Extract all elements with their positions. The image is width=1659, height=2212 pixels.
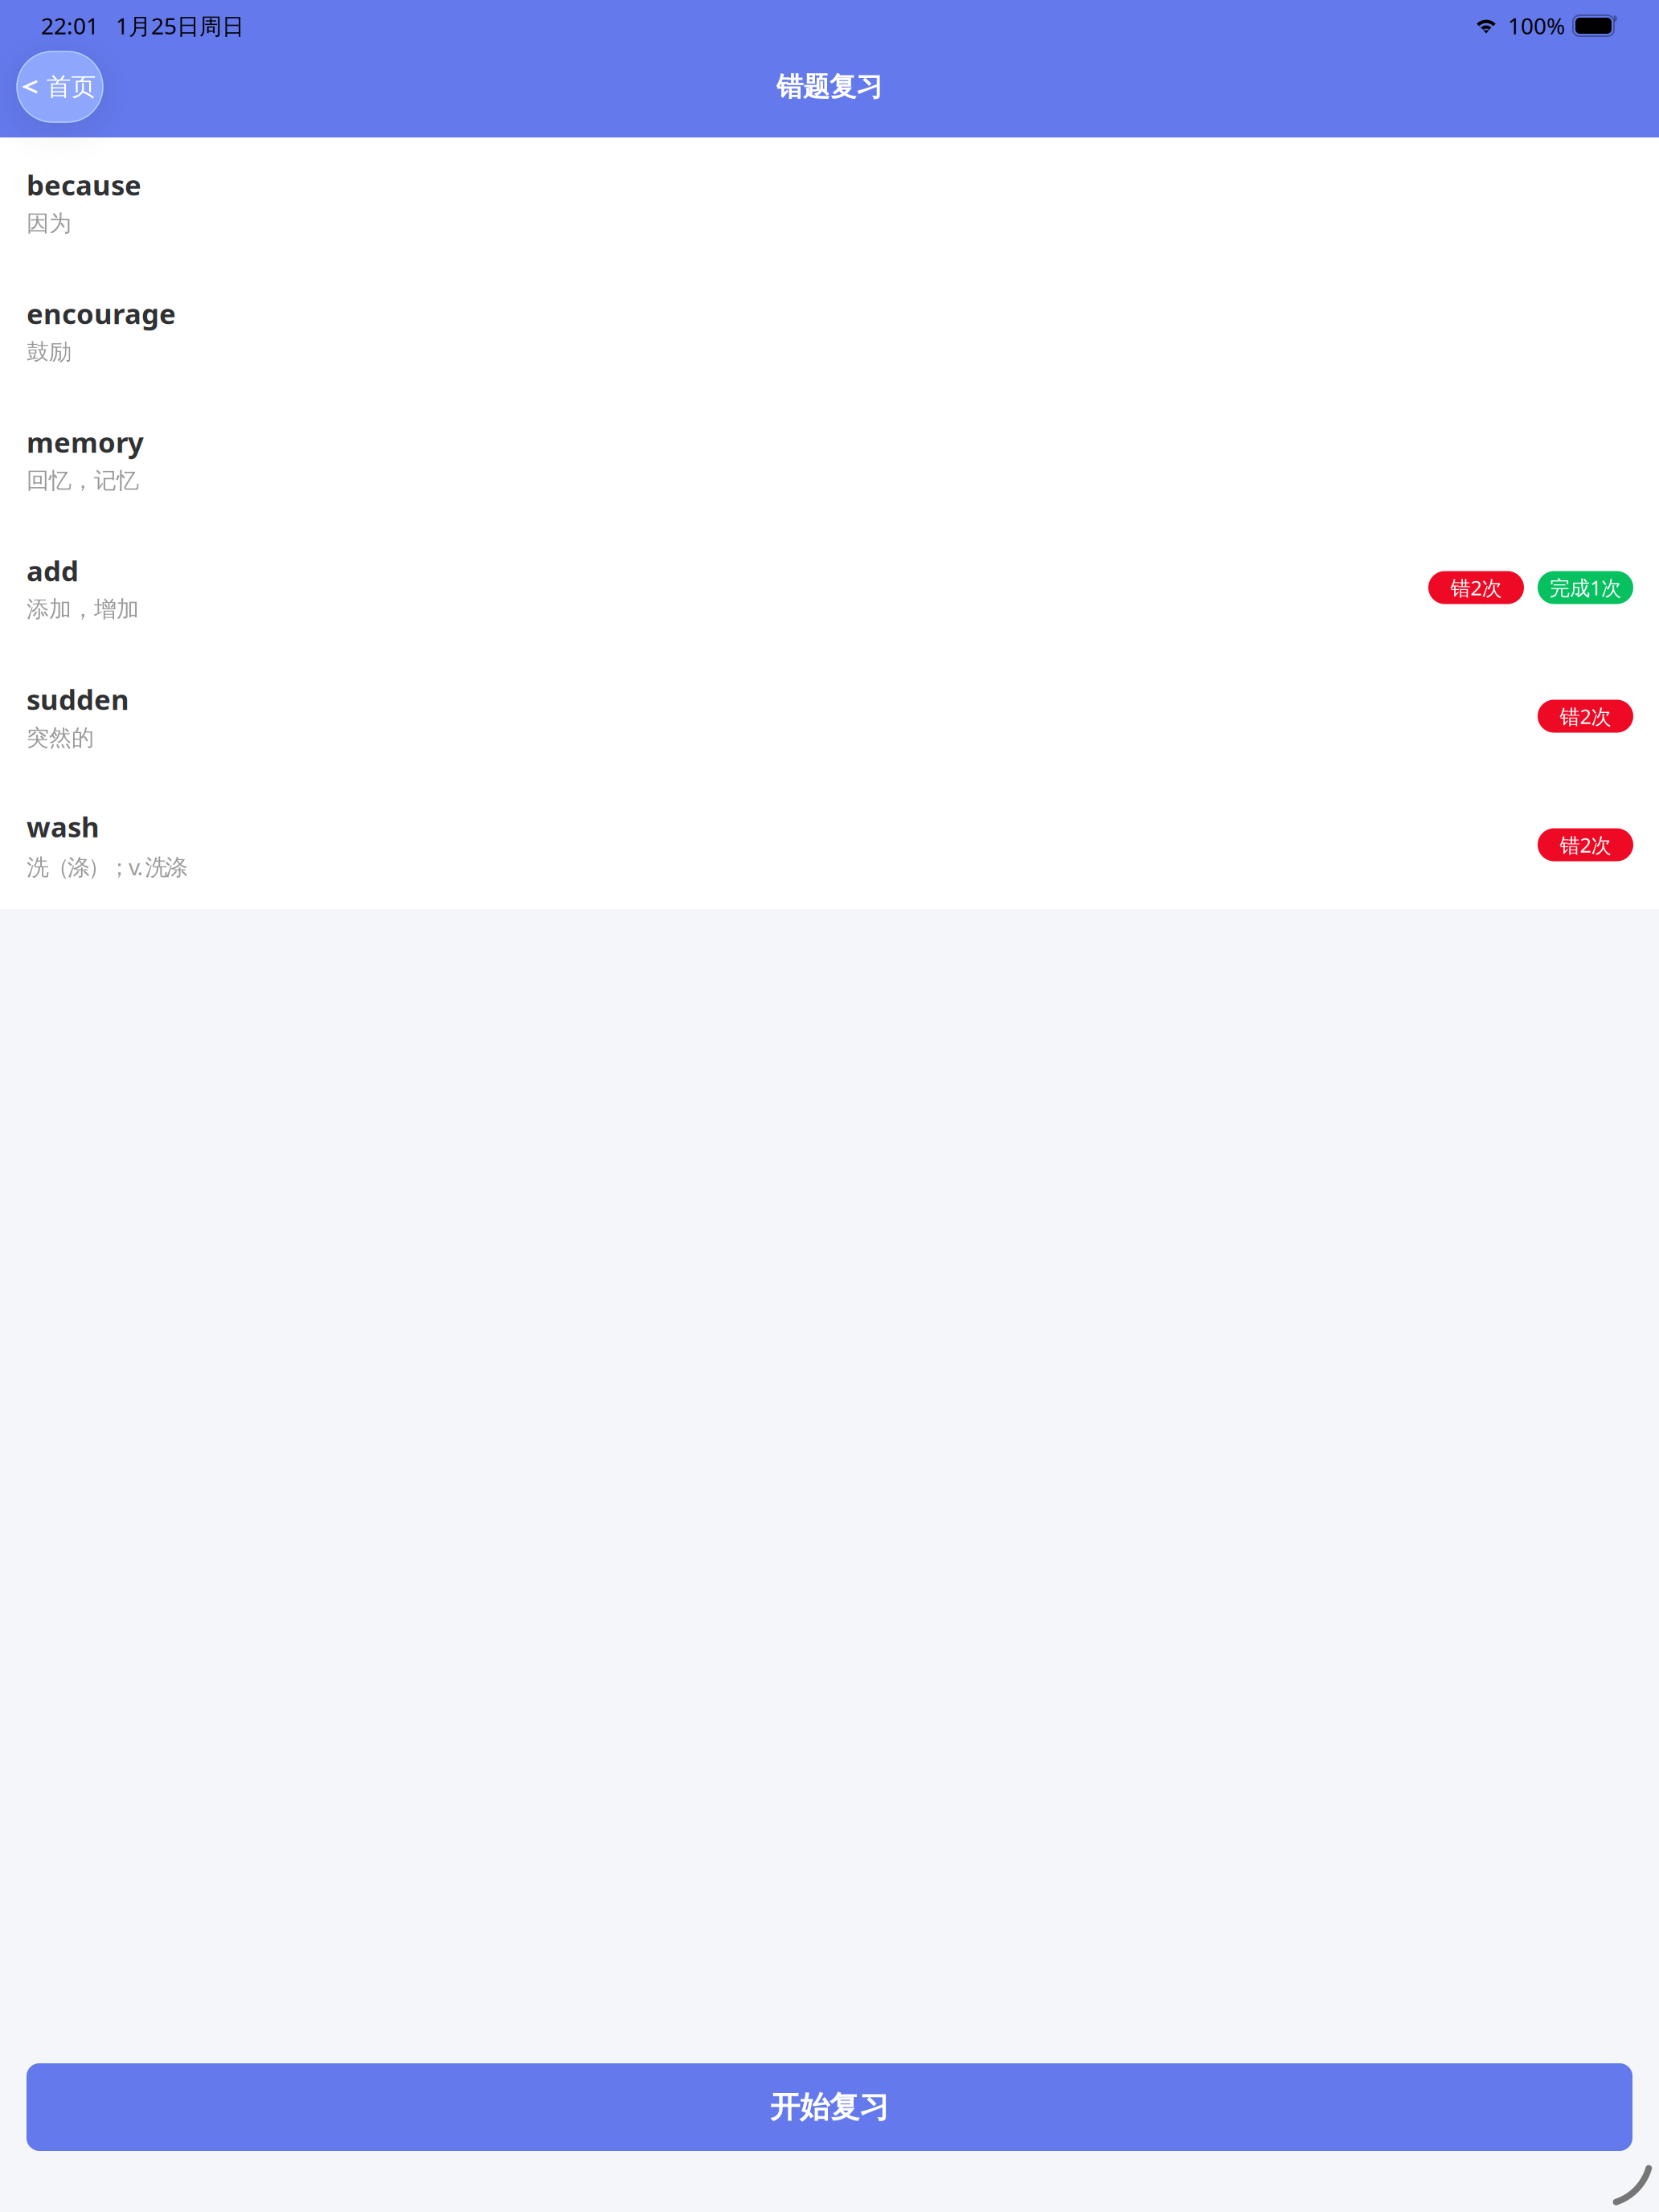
button[interactable]: encourage [0, 266, 1659, 395]
staticText: 100% [1508, 11, 1565, 41]
staticText: 错2次 [1560, 831, 1611, 858]
staticText: 错2次 [1450, 574, 1502, 601]
staticText: 突然的 [27, 724, 94, 752]
staticText: 因为 [27, 210, 72, 237]
staticText: 洗（涤）；v. 洗涤 [27, 852, 188, 881]
button[interactable]: 开始复习 [27, 2063, 1632, 2151]
staticText: memory [27, 423, 144, 460]
staticText: add [27, 552, 79, 589]
button[interactable]: add [0, 523, 1659, 652]
staticText: encourage [27, 295, 176, 332]
staticText: wash [27, 808, 100, 845]
staticText: 开始复习 [770, 2089, 889, 2126]
staticText: because [27, 166, 141, 203]
staticText: sudden [27, 681, 129, 718]
staticText: 22:01 1月25日周日 [41, 11, 244, 41]
button[interactable]: 返回首页 [17, 51, 103, 122]
button[interactable]: sudden [0, 652, 1659, 780]
staticText: 鼓励 [27, 338, 72, 366]
button[interactable]: because [0, 137, 1659, 266]
staticText: 首页 [46, 72, 96, 102]
staticText: 回忆，记忆 [27, 467, 139, 494]
staticText: 错2次 [1560, 703, 1611, 730]
button[interactable]: memory [0, 395, 1659, 523]
staticText: 完成1次 [1550, 574, 1621, 601]
staticText: 添加，增加 [27, 595, 139, 623]
button[interactable]: wash [0, 780, 1659, 909]
staticText: 错题复习 [776, 70, 883, 103]
